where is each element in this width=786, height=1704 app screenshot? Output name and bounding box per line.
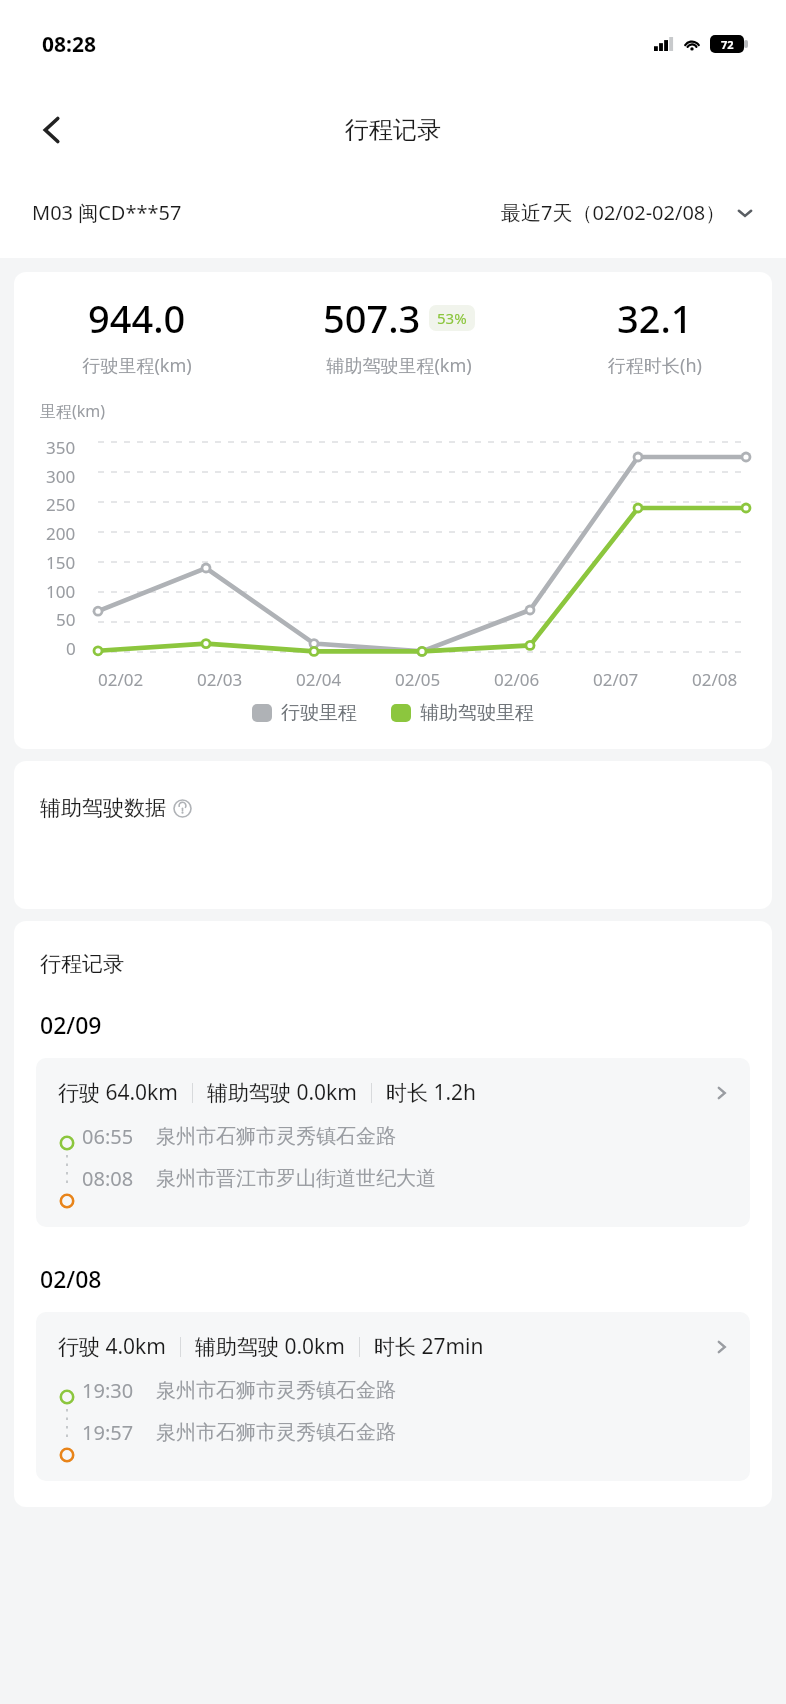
staticText: 08:08 bbox=[82, 1165, 134, 1192]
staticText: 行驶里程(km) bbox=[82, 353, 192, 378]
staticText: 02/03 bbox=[197, 668, 243, 691]
staticText: 150 bbox=[46, 551, 76, 574]
staticText: 泉州市石狮市灵秀镇石金路 bbox=[156, 1420, 396, 1445]
staticText: 100 bbox=[46, 580, 76, 603]
staticText: 泉州市石狮市灵秀镇石金路 bbox=[156, 1124, 396, 1149]
button[interactable]: 辅助驾驶数据 bbox=[40, 795, 192, 821]
staticText: 辅助驾驶里程 bbox=[420, 701, 534, 725]
staticText: 02/08 bbox=[40, 1263, 102, 1294]
staticText: 02/09 bbox=[40, 1009, 102, 1040]
staticText: 250 bbox=[46, 493, 76, 516]
staticText: 0 bbox=[66, 637, 76, 660]
staticText: 350 bbox=[46, 436, 76, 459]
staticText: 19:57 bbox=[82, 1419, 134, 1446]
staticText: 02/02 bbox=[98, 668, 144, 691]
staticText: 辅助驾驶里程(km) bbox=[326, 353, 472, 378]
staticText: 行驶 4.0km bbox=[58, 1332, 166, 1361]
staticText: 行驶里程 bbox=[281, 701, 357, 725]
staticText: 最近7天（02/02-02/08） bbox=[501, 199, 726, 226]
staticText: 50 bbox=[56, 608, 76, 631]
staticText: 72 bbox=[721, 37, 734, 52]
staticText: 辅助驾驶 0.0km bbox=[195, 1332, 345, 1361]
staticText: 08:28 bbox=[42, 30, 96, 59]
staticText: 300 bbox=[46, 465, 76, 488]
staticText: 507.3 bbox=[323, 292, 421, 344]
button[interactable]: Back bbox=[28, 106, 76, 154]
button[interactable]: 行驶 4.0km bbox=[36, 1312, 750, 1481]
staticText: 行程时长(h) bbox=[608, 353, 702, 378]
staticText: 泉州市石狮市灵秀镇石金路 bbox=[156, 1378, 396, 1403]
staticText: 辅助驾驶 0.0km bbox=[207, 1078, 357, 1107]
staticText: 53% bbox=[437, 308, 467, 328]
staticText: 辅助驾驶数据 bbox=[40, 795, 166, 821]
staticText: 02/04 bbox=[296, 668, 342, 691]
staticText: 行程记录 bbox=[345, 115, 441, 145]
button[interactable]: 行驶 64.0km bbox=[36, 1058, 750, 1227]
staticText: 02/05 bbox=[395, 668, 441, 691]
button[interactable]: M03 闽CD***57 bbox=[32, 199, 182, 226]
staticText: 944.0 bbox=[88, 292, 186, 344]
staticText: 泉州市晋江市罗山街道世纪大道 bbox=[156, 1166, 436, 1191]
staticText: 02/07 bbox=[593, 668, 639, 691]
staticText: 32.1 bbox=[617, 292, 693, 344]
staticText: 02/08 bbox=[692, 668, 738, 691]
staticText: 行驶 64.0km bbox=[58, 1078, 178, 1107]
button[interactable]: 最近7天（02/02-02/08） bbox=[210, 199, 754, 226]
staticText: 06:55 bbox=[82, 1123, 134, 1150]
staticText: 19:30 bbox=[82, 1377, 134, 1404]
staticText: 行程记录 bbox=[40, 951, 124, 977]
staticText: 时长 1.2h bbox=[386, 1078, 477, 1107]
staticText: 02/06 bbox=[494, 668, 540, 691]
staticText: 时长 27min bbox=[374, 1332, 484, 1361]
staticText: 200 bbox=[46, 522, 76, 545]
staticText: 里程(km) bbox=[40, 400, 106, 422]
